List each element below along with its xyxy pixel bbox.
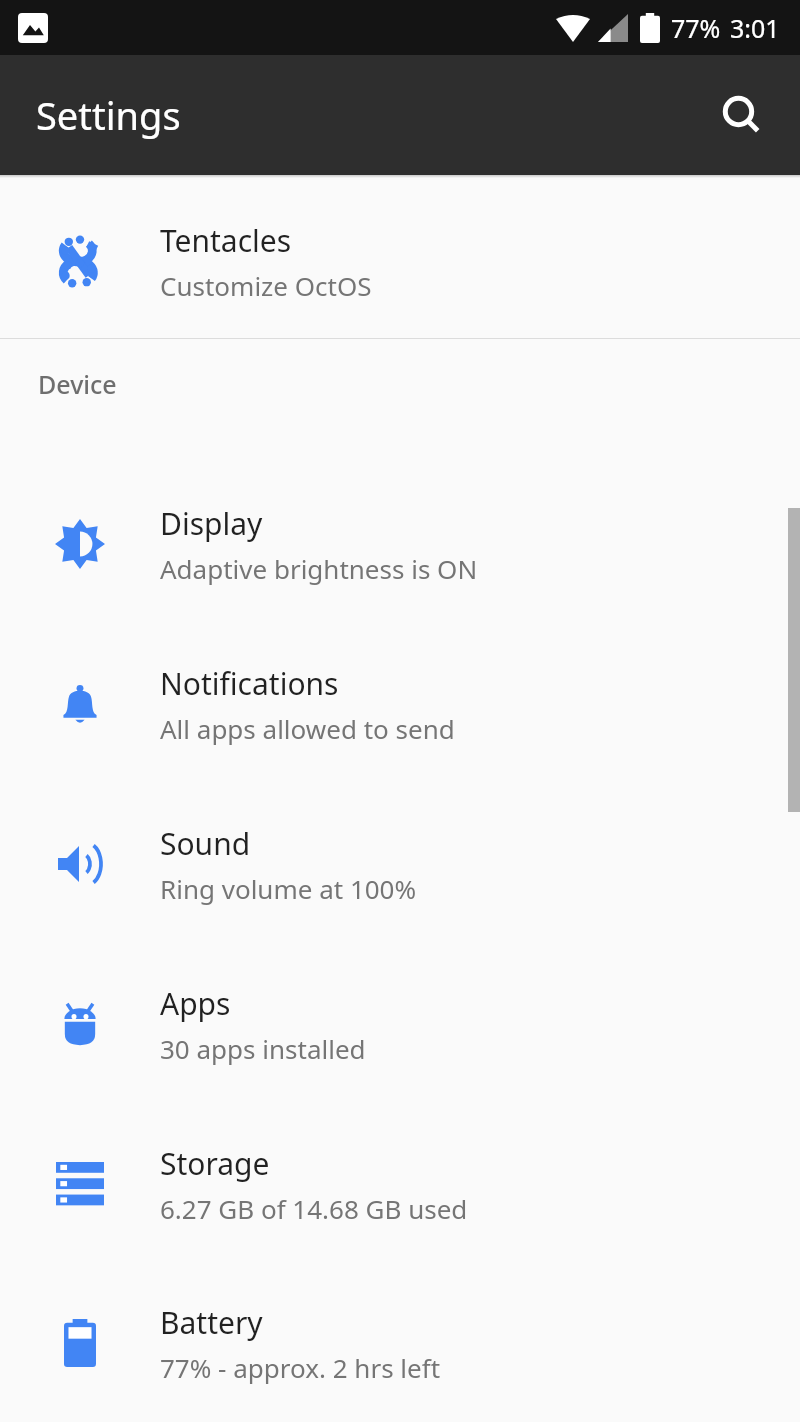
button[interactable]: Notifications [0,624,800,784]
staticText: Adaptive brightness is ON [160,551,478,586]
staticText: 77% [671,11,721,45]
staticText: Notifications [160,663,339,704]
staticText: 77% - approx. 2 hrs left [160,1350,441,1385]
button[interactable]: Sound [0,784,800,944]
staticText: Settings [36,89,181,141]
staticText: Tentacles [160,220,292,261]
button[interactable]: Apps [0,944,800,1104]
button[interactable]: Storage [0,1104,800,1264]
staticText: Display [160,503,263,544]
staticText: Apps [160,983,231,1024]
button[interactable]: Search [706,79,778,151]
button[interactable]: Display [0,464,800,624]
staticText: 6.27 GB of 14.68 GB used [160,1191,468,1226]
staticText: All apps allowed to send [160,711,455,746]
button[interactable]: Battery [0,1264,800,1422]
staticText: Storage [160,1143,270,1184]
staticText: Customize OctOS [160,268,372,303]
staticText: 30 apps installed [160,1031,366,1066]
staticText: Device [38,367,117,401]
button[interactable]: Tentacles [0,185,800,338]
staticText: Ring volume at 100% [160,871,417,906]
staticText: Battery [160,1302,263,1343]
staticText: 3:01 [730,11,780,45]
staticText: Sound [160,823,251,864]
